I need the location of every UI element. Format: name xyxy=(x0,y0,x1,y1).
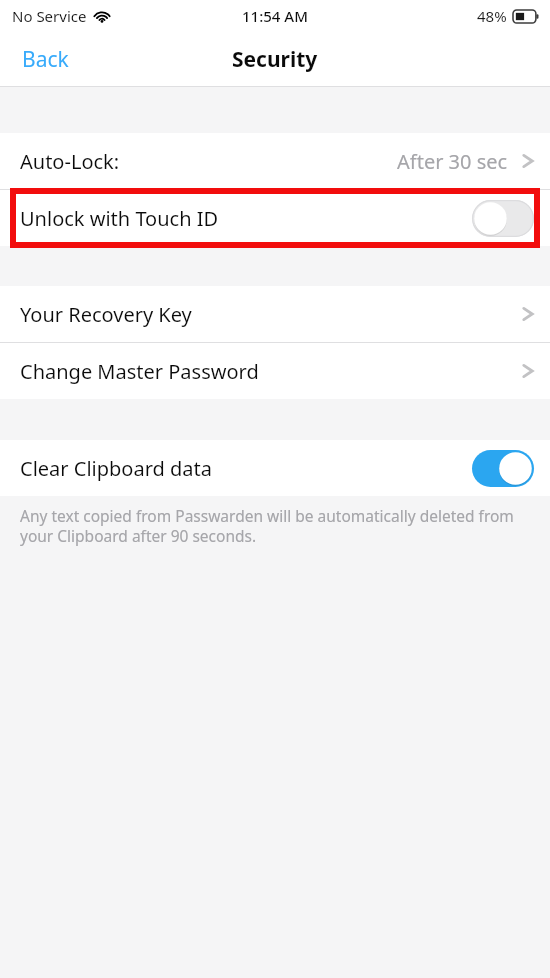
button[interactable]: Off xyxy=(472,200,534,237)
staticText: No Service xyxy=(12,6,87,26)
staticText: Change Master Password xyxy=(20,358,259,385)
button[interactable]: Clear Clipboard data xyxy=(0,440,550,496)
button[interactable]: Your Recovery Key xyxy=(0,286,550,342)
button[interactable]: Back xyxy=(0,39,85,80)
staticText: Clear Clipboard data xyxy=(20,455,212,482)
button[interactable]: On xyxy=(472,450,534,487)
button[interactable]: Change Master Password xyxy=(0,343,550,399)
staticText: Unlock with Touch ID xyxy=(20,205,219,232)
button[interactable]: Unlock with Touch ID xyxy=(0,190,550,246)
button[interactable]: Auto-Lock: xyxy=(0,133,550,189)
staticText: Auto-Lock: xyxy=(20,148,120,175)
staticText: After 30 sec xyxy=(397,148,508,175)
staticText: 48% xyxy=(477,6,507,26)
staticText: Any text copied from Passwarden will be … xyxy=(20,505,526,547)
staticText: Back xyxy=(22,45,69,74)
staticText: Your Recovery Key xyxy=(20,301,192,328)
staticText: Security xyxy=(232,45,318,74)
staticText: 11:54 AM xyxy=(242,6,308,26)
